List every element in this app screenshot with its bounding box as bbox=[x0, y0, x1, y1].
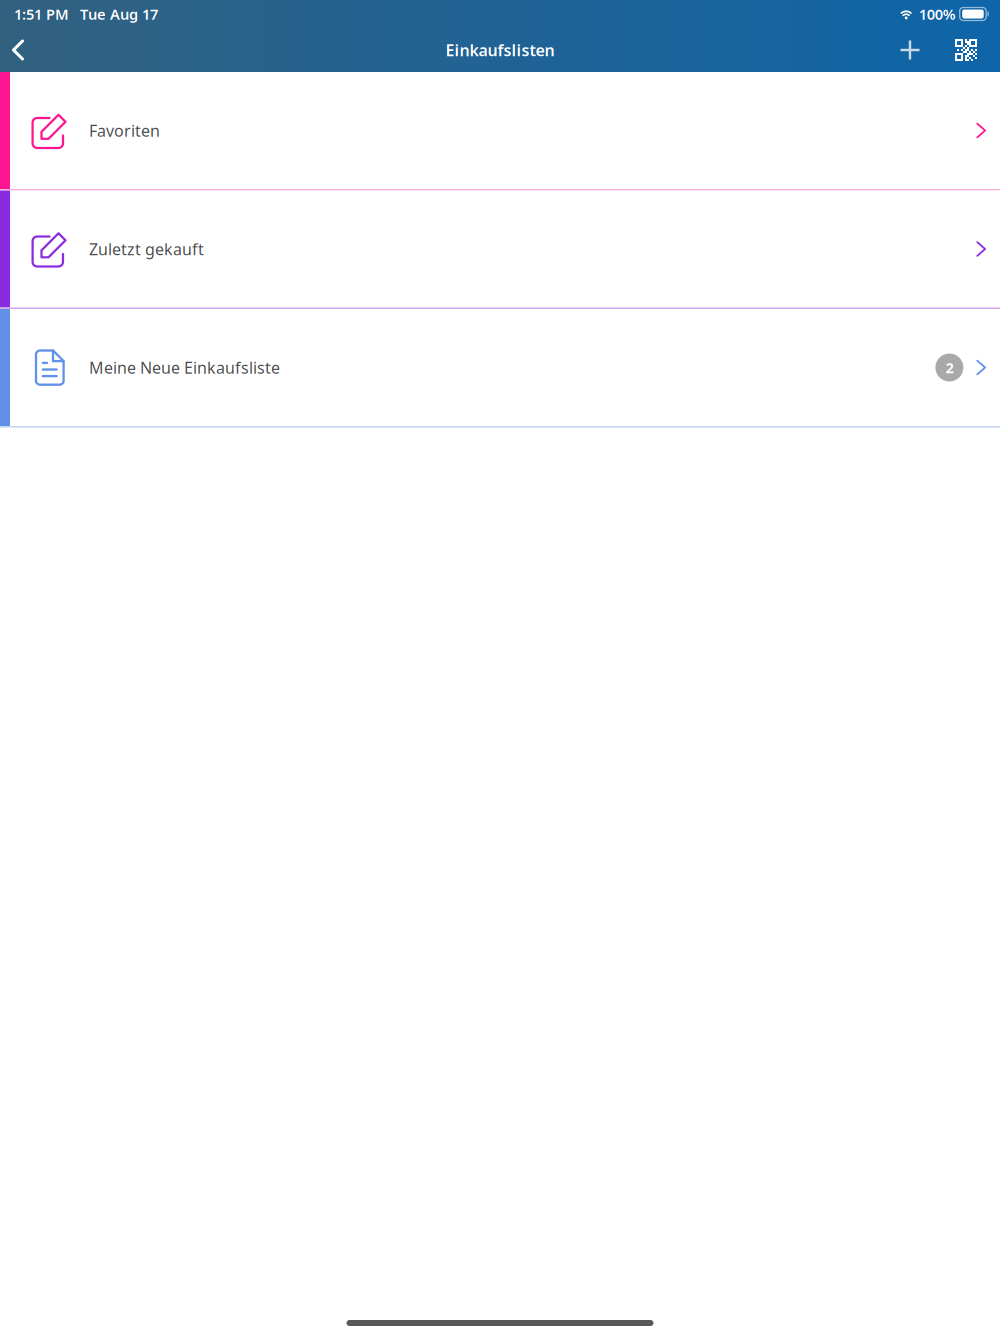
staticText: 2 bbox=[945, 358, 953, 377]
staticText: 1:51 PM bbox=[14, 4, 69, 24]
staticText: Meine Neue Einkaufsliste bbox=[89, 357, 280, 378]
button[interactable]: Zuletzt gekauft bbox=[0, 190, 1000, 309]
staticText: Tue Aug 17 bbox=[80, 4, 158, 24]
button[interactable]: Scan QR code bbox=[938, 28, 994, 72]
button[interactable]: Meine Neue Einkaufsliste bbox=[0, 309, 1000, 427]
button[interactable]: Back bbox=[0, 28, 36, 72]
staticText: Zuletzt gekauft bbox=[89, 238, 204, 260]
button[interactable]: Add list bbox=[882, 28, 938, 72]
staticText: Favoriten bbox=[89, 120, 160, 141]
staticText: 100% bbox=[919, 4, 956, 24]
button[interactable]: Favoriten bbox=[0, 72, 1000, 190]
staticText: Einkaufslisten bbox=[445, 39, 554, 61]
